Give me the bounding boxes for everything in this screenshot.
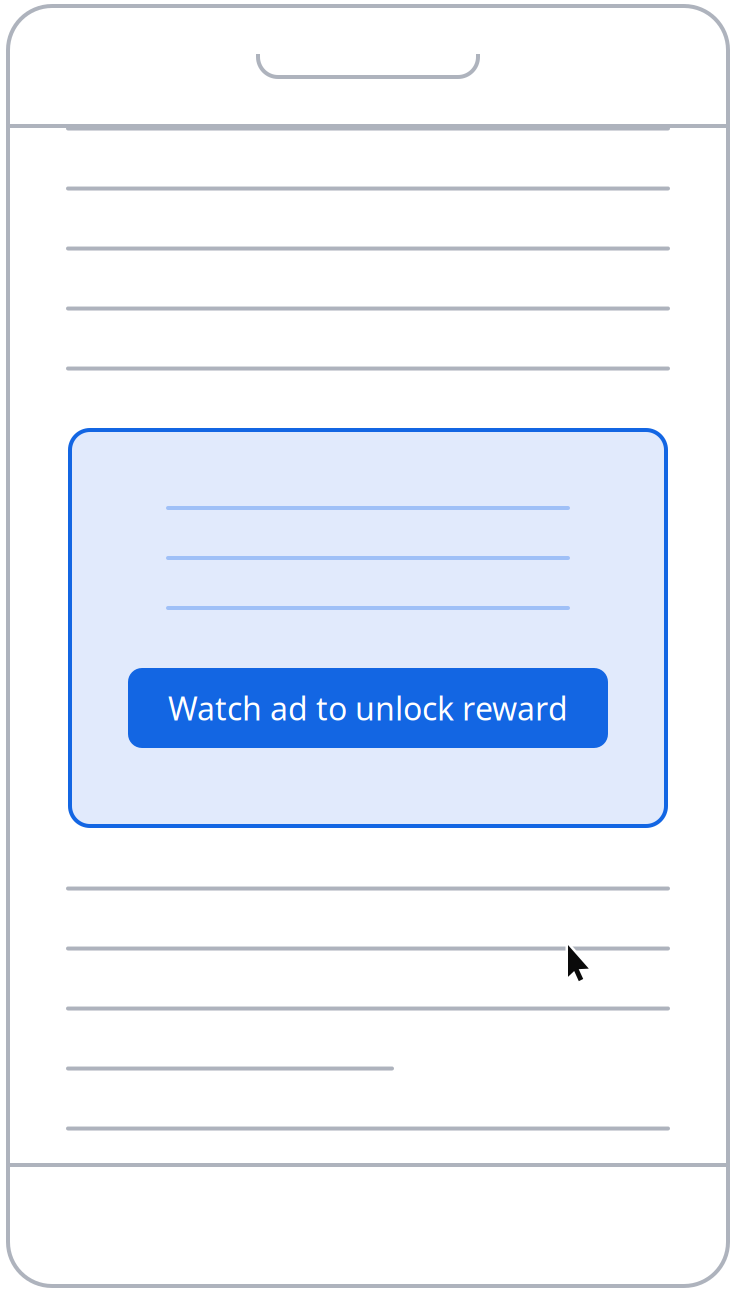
button[interactable]: Watch ad to unlock reward [128,668,608,748]
staticText: Watch ad to unlock reward [168,687,568,729]
